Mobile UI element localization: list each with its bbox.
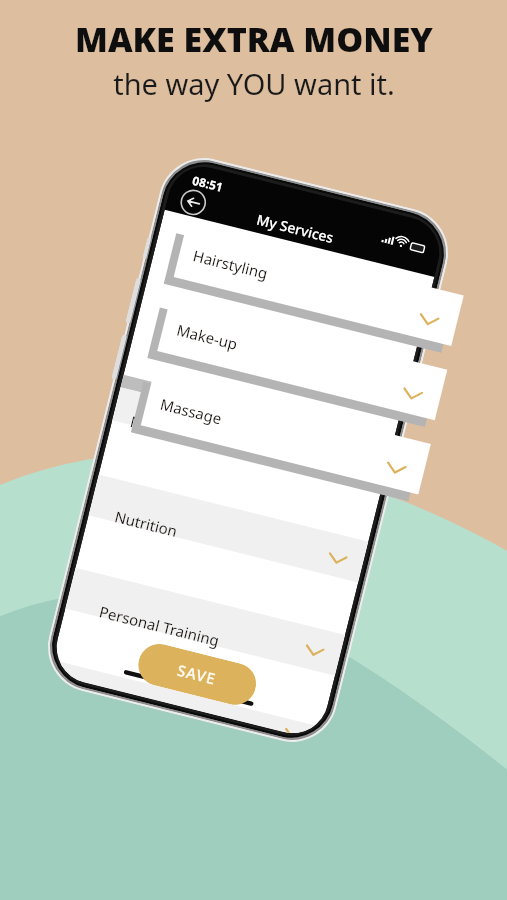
staticText: 08:51 xyxy=(191,172,225,195)
button[interactable]: Back xyxy=(176,185,210,219)
staticText: MAKE EXTRA MONEY xyxy=(75,16,433,62)
staticText: Nails xyxy=(128,411,167,439)
staticText: SAVE xyxy=(175,660,219,689)
button[interactable]: Personal Training xyxy=(96,594,308,678)
staticText: Make-up xyxy=(175,320,240,354)
button[interactable]: SAVE xyxy=(134,639,260,709)
staticText: Hairstyling xyxy=(191,245,271,283)
button[interactable]: Make-up xyxy=(157,301,447,420)
button[interactable]: Nails xyxy=(126,404,338,488)
staticText: My Services xyxy=(255,210,336,247)
button[interactable]: Massage xyxy=(141,375,431,494)
staticText: Nutrition xyxy=(113,506,180,541)
staticText: Personal Training xyxy=(97,601,221,650)
staticText: the way YOU want it. xyxy=(113,64,395,103)
staticText: Massage xyxy=(158,394,224,428)
button[interactable]: Therapy xyxy=(88,677,293,734)
button[interactable]: Hairstyling xyxy=(174,226,464,346)
button[interactable]: Nutrition xyxy=(111,499,323,583)
